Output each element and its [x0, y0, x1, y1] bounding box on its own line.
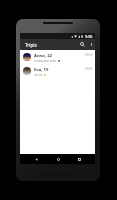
staticText: Tripix: [25, 42, 37, 48]
button[interactable]: Recents: [74, 154, 84, 164]
button[interactable]: Back: [31, 154, 41, 164]
button[interactable]: Home: [53, 154, 63, 164]
staticText: someone sent: [34, 58, 57, 63]
staticText: xo xo: [34, 72, 43, 77]
staticText: 09:06: [85, 67, 93, 71]
button[interactable]: Eva, 19: [20, 64, 95, 78]
staticText: 9:05: [85, 34, 93, 39]
staticText: 09:26: [85, 53, 93, 57]
staticText: Eva, 19: [34, 67, 49, 73]
button[interactable]: More options: [87, 39, 95, 50]
button[interactable]: Search: [78, 39, 87, 50]
staticText: Anna, 22: [34, 53, 52, 59]
button[interactable]: Anna, 22: [20, 50, 95, 64]
